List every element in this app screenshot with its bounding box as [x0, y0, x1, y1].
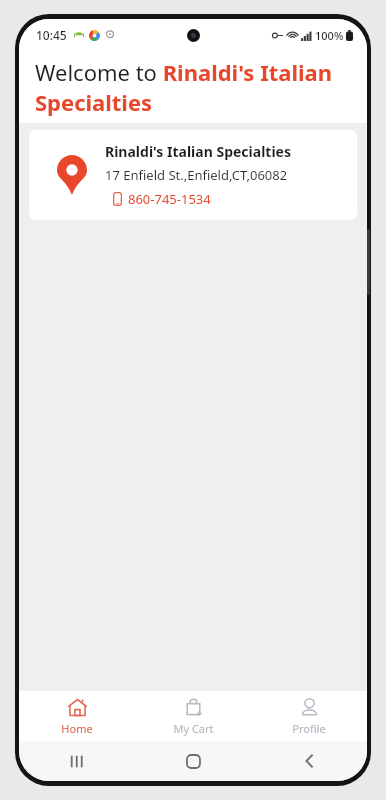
staticText: Welcome to Rinaldi's Italian Specialties: [35, 57, 355, 117]
other: My Cart: [183, 697, 204, 718]
button[interactable]: Profile: [251, 691, 367, 741]
other: Home: [67, 697, 88, 718]
staticText: Home: [61, 721, 93, 736]
button[interactable]: My Cart: [135, 691, 251, 741]
button[interactable]: Back: [251, 741, 367, 781]
other: Profile: [299, 697, 320, 718]
staticText: My Cart: [173, 721, 214, 736]
staticText: 17 Enfield St.,Enfield,CT,06082: [105, 166, 288, 184]
staticText: 860-745-1534: [128, 190, 211, 208]
button[interactable]: Home: [135, 741, 251, 781]
staticText: 10:45: [36, 27, 67, 43]
button[interactable]: Home: [19, 691, 135, 741]
staticText: 100%: [315, 28, 344, 43]
button[interactable]: 860-745-1534: [105, 190, 211, 208]
button[interactable]: Rinaldi's Italian Specialties: [29, 130, 357, 220]
staticText: Profile: [292, 721, 326, 736]
staticText: Rinaldi's Italian Specialties: [105, 142, 291, 161]
button[interactable]: Recent apps: [19, 741, 135, 781]
